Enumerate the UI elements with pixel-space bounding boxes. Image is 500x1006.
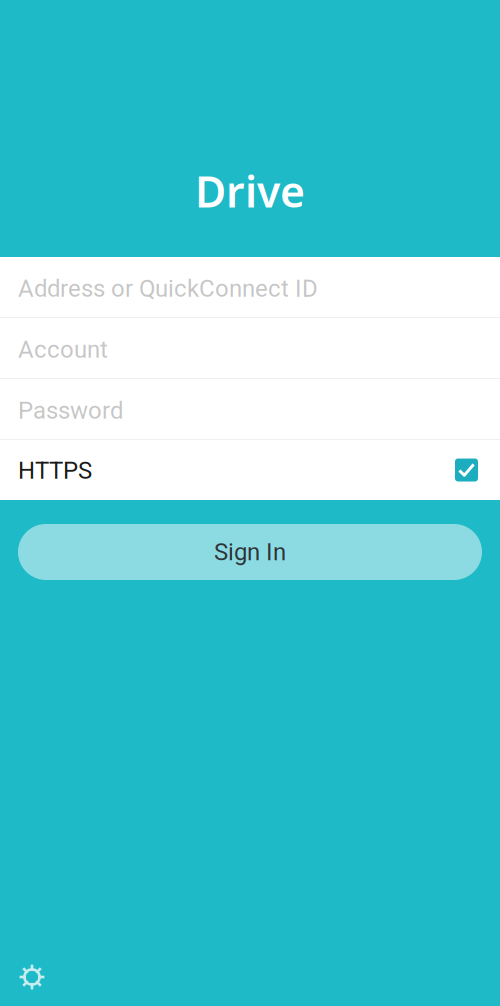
button[interactable]: Account [0,318,500,378]
button[interactable]: Sign In [18,524,482,580]
staticText: Drive [195,162,305,220]
staticText: Address or QuickConnect ID [18,274,318,302]
button[interactable]: Settings [15,960,49,994]
staticText: Account [18,335,108,363]
staticText: HTTPS [18,456,92,484]
button[interactable]: Password [0,379,500,439]
button[interactable]: HTTPS [0,440,500,500]
button[interactable]: Address or QuickConnect ID [0,257,500,317]
staticText: Sign In [214,538,286,566]
staticText: Password [18,396,123,424]
